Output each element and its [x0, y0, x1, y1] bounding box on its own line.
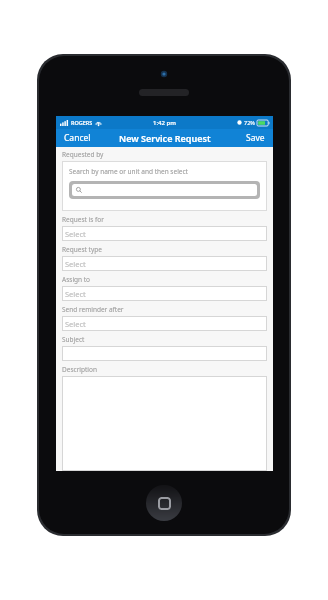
button[interactable]: Select — [62, 256, 267, 271]
staticText: Subject — [62, 335, 85, 344]
button[interactable] — [62, 376, 267, 471]
staticText: 1:42 pm — [153, 119, 176, 127]
staticText: Search by name or unit and then select — [69, 167, 188, 176]
button[interactable] — [62, 346, 267, 361]
staticText: Select — [65, 229, 86, 239]
staticText: Select — [65, 319, 86, 329]
staticText: Request is for — [62, 215, 104, 224]
button[interactable]: Select — [62, 316, 267, 331]
staticText: Request type — [62, 245, 102, 254]
staticText: Requested by — [62, 150, 104, 159]
button[interactable]: Save — [238, 129, 273, 147]
staticText: Select — [65, 259, 86, 269]
button[interactable]: Select — [62, 286, 267, 301]
staticText: Assign to — [62, 275, 91, 284]
staticText: 72% — [244, 119, 255, 126]
button[interactable]: Cancel — [56, 129, 99, 147]
staticText: Send reminder after — [62, 305, 124, 314]
staticText: ROGERS — [71, 119, 93, 126]
button[interactable]: Select — [62, 226, 267, 241]
staticText: New Service Request — [119, 132, 211, 144]
staticText: Description — [62, 365, 97, 374]
other: Search — [76, 187, 82, 193]
staticText: Cancel — [64, 132, 91, 144]
staticText: Select — [65, 289, 86, 299]
staticText: Save — [246, 132, 265, 144]
button[interactable]: Home — [146, 485, 182, 521]
button[interactable]: Search — [69, 181, 260, 199]
